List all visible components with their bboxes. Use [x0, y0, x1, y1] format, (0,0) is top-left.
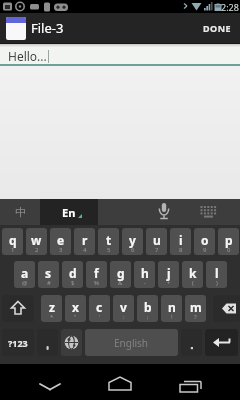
staticText: y	[129, 232, 136, 248]
button[interactable]	[2, 295, 34, 322]
staticText: '	[99, 313, 101, 321]
button[interactable]: j	[158, 261, 179, 288]
button[interactable]	[213, 295, 240, 322]
button[interactable]: p	[218, 228, 239, 255]
staticText: 5	[107, 246, 111, 254]
button[interactable]: q	[2, 228, 23, 255]
staticText: 8	[179, 246, 183, 254]
staticText: z	[49, 299, 55, 315]
staticText: g	[117, 265, 125, 281]
staticText: (	[192, 279, 194, 287]
button[interactable]: English	[85, 329, 178, 356]
staticText: English	[114, 336, 149, 350]
staticText: e	[57, 232, 65, 248]
staticText: 4	[83, 246, 87, 254]
staticText: v	[120, 299, 127, 315]
staticText: j	[167, 265, 171, 281]
staticText: w	[31, 232, 42, 248]
staticText: ?	[194, 313, 197, 321]
button[interactable]: m	[185, 295, 206, 322]
staticText: o	[201, 232, 209, 248]
button[interactable]: t	[98, 228, 119, 255]
button[interactable]	[160, 364, 240, 400]
button[interactable]	[156, 199, 172, 225]
staticText: m	[190, 299, 202, 315]
button[interactable]: y	[122, 228, 143, 255]
staticText: 0	[227, 246, 231, 254]
button[interactable]: Hello...	[0, 44, 240, 64]
staticText: En	[62, 205, 76, 220]
button[interactable]: w	[26, 228, 47, 255]
staticText: !	[171, 313, 173, 321]
staticText: ;	[147, 313, 149, 321]
staticText: *	[50, 313, 54, 321]
staticText: d	[69, 265, 77, 281]
button[interactable]: DONE	[195, 13, 240, 43]
button[interactable]	[181, 329, 202, 356]
staticText: x	[72, 299, 79, 315]
staticText: r	[82, 232, 88, 248]
staticText: 2:28	[221, 1, 239, 13]
staticText: 3	[59, 246, 63, 254]
button[interactable]	[37, 329, 58, 356]
button[interactable]: 中	[0, 199, 40, 225]
staticText: 7	[155, 246, 159, 254]
staticText: ?123	[8, 337, 28, 349]
staticText: h	[141, 265, 149, 281]
button[interactable]: i	[170, 228, 191, 255]
button[interactable]	[80, 364, 160, 400]
staticText: f	[94, 265, 99, 281]
button[interactable]: l	[206, 261, 227, 288]
staticText: #	[47, 279, 51, 287]
staticText: b	[144, 299, 152, 315]
staticText: t	[106, 232, 112, 248]
button[interactable]: n	[161, 295, 182, 322]
staticText: File-3	[31, 19, 64, 37]
button[interactable]	[200, 199, 218, 225]
button[interactable]: En	[40, 199, 98, 225]
staticText: p	[225, 232, 233, 248]
button[interactable]	[61, 329, 82, 356]
staticText: l	[215, 265, 219, 281]
staticText: @	[22, 279, 28, 287]
button[interactable]: z	[41, 295, 62, 322]
staticText: u	[153, 232, 161, 248]
staticText: 9	[203, 246, 207, 254]
staticText: s	[45, 265, 52, 281]
staticText: "	[74, 313, 77, 321]
button[interactable]: h	[134, 261, 155, 288]
staticText: q	[9, 232, 17, 248]
button[interactable]: x	[65, 295, 86, 322]
button[interactable]: o	[194, 228, 215, 255]
staticText: %	[94, 279, 99, 287]
staticText: -	[144, 279, 146, 287]
button[interactable]: d	[62, 261, 83, 288]
staticText: n	[168, 299, 176, 315]
staticText: 1	[11, 246, 15, 254]
button[interactable]: f	[86, 261, 107, 288]
button[interactable]: b	[137, 295, 158, 322]
staticText: )	[216, 279, 218, 287]
button[interactable]: k	[182, 261, 203, 288]
staticText: 6	[131, 246, 135, 254]
staticText: 2	[35, 246, 39, 254]
staticText: Hello...	[8, 48, 47, 64]
staticText: DONE	[203, 22, 232, 34]
button[interactable]: e	[50, 228, 71, 255]
button[interactable]: ?123	[2, 329, 34, 356]
button[interactable]: g	[110, 261, 131, 288]
staticText: a	[21, 265, 29, 281]
button[interactable]: v	[113, 295, 134, 322]
button[interactable]: s	[38, 261, 59, 288]
button[interactable]	[0, 364, 80, 400]
staticText: 中	[15, 205, 26, 219]
button[interactable]: r	[74, 228, 95, 255]
staticText: c	[96, 299, 103, 315]
button[interactable]: a	[14, 261, 35, 288]
button[interactable]: u	[146, 228, 167, 255]
staticText: i	[179, 232, 183, 248]
staticText: :	[123, 313, 125, 321]
button[interactable]: c	[89, 295, 110, 322]
staticText: k	[189, 265, 197, 281]
button[interactable]	[205, 329, 238, 356]
